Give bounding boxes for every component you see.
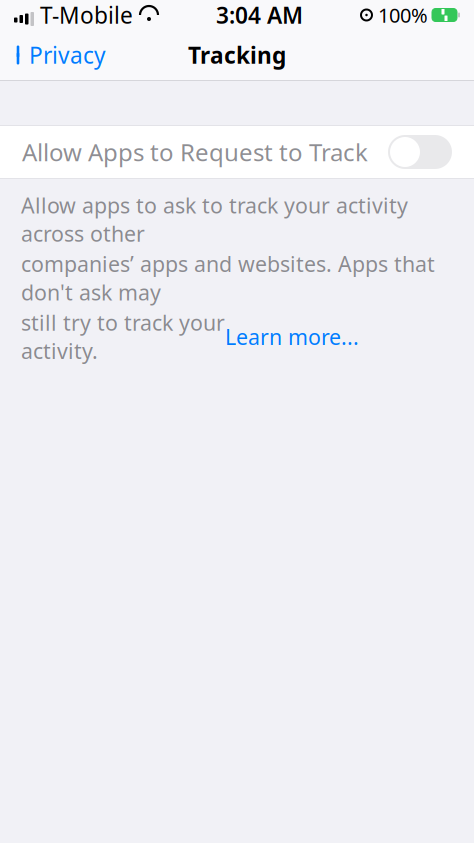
staticText: Allow Apps to Request to Track [22,136,368,168]
staticText: still try to track your activity. [21,308,225,365]
button[interactable]: Allow Apps to Request to Track [0,126,474,178]
staticText: companies’ apps and websites. Apps that … [21,250,435,306]
staticText: 3:04 AM [216,0,303,30]
button[interactable]: Privacy [0,32,118,78]
staticText: Tracking [188,40,286,70]
button[interactable]: Learn more... [225,322,359,351]
staticText: Learn more... [225,322,359,351]
staticText: Privacy [29,40,106,70]
staticText: Allow apps to ask to track your activity… [21,191,408,248]
staticText: T-Mobile [40,0,133,30]
staticText: 100% [378,2,428,28]
